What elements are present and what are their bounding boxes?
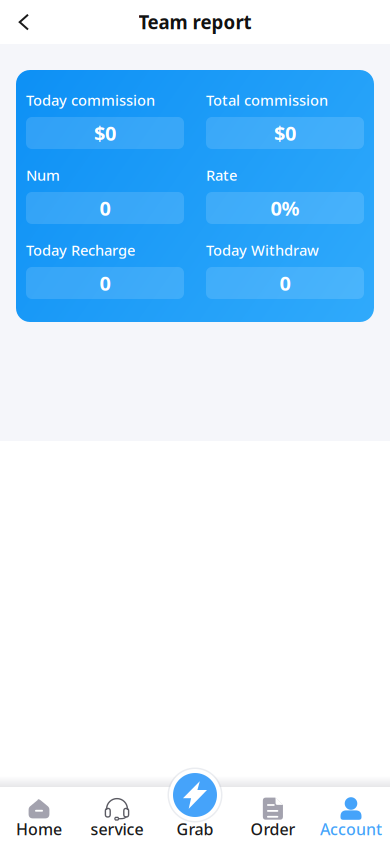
- button[interactable]: Order: [234, 787, 312, 844]
- staticText: Rate: [206, 165, 237, 185]
- staticText: Home: [16, 818, 62, 840]
- button[interactable]: Grab: [167, 767, 223, 823]
- staticText: Total commission: [206, 90, 328, 110]
- staticText: $0: [274, 120, 296, 146]
- button[interactable]: Back: [0, 0, 48, 44]
- button[interactable]: Home: [0, 787, 78, 844]
- staticText: 0%: [270, 195, 299, 221]
- staticText: $0: [94, 120, 116, 146]
- button[interactable]: Grab: [156, 787, 234, 844]
- staticText: 0: [279, 270, 290, 296]
- staticText: Today Withdraw: [206, 240, 319, 260]
- staticText: Account: [320, 818, 382, 840]
- button[interactable]: service: [78, 787, 156, 844]
- staticText: Grab: [176, 818, 213, 840]
- button[interactable]: Account: [312, 787, 390, 844]
- staticText: Today Recharge: [26, 240, 135, 260]
- staticText: 0: [99, 195, 110, 221]
- staticText: Today commission: [26, 90, 155, 110]
- staticText: Team report: [138, 10, 251, 34]
- staticText: Order: [250, 818, 295, 840]
- staticText: service: [90, 818, 143, 840]
- staticText: Num: [26, 165, 60, 185]
- staticText: 0: [99, 270, 110, 296]
